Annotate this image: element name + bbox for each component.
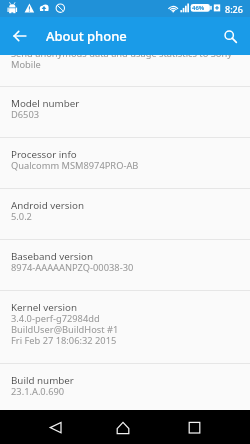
button[interactable]: Android version bbox=[0, 189, 250, 239]
staticText: Processor info bbox=[11, 148, 77, 161]
staticText: 46% bbox=[192, 4, 205, 12]
staticText: Send anonymous data and usage statistics… bbox=[11, 55, 232, 60]
staticText: 3.4.0-perf-g72984dd BuildUser@BuildHost … bbox=[11, 314, 119, 347]
staticText: Kernel version bbox=[11, 301, 78, 314]
staticText: 23.1.A.0.690 bbox=[11, 387, 65, 398]
button[interactable]: Back bbox=[0, 410, 84, 444]
staticText: 8974-AAAAANPZQ-00038-30 bbox=[11, 263, 134, 274]
staticText: Android version bbox=[11, 199, 84, 212]
button[interactable]: Processor info bbox=[0, 138, 250, 188]
button[interactable]: Back bbox=[0, 17, 39, 55]
staticText: D6503 bbox=[11, 110, 40, 121]
button[interactable]: Send anonymous data and usage statistics… bbox=[0, 55, 250, 86]
button[interactable]: Kernel version bbox=[0, 291, 250, 363]
staticText: Model number bbox=[11, 97, 80, 110]
button[interactable]: Search bbox=[211, 17, 250, 55]
button[interactable]: Model number bbox=[0, 87, 250, 137]
button[interactable]: Baseband version bbox=[0, 240, 250, 290]
staticText: Baseband version bbox=[11, 250, 93, 263]
staticText: About phone bbox=[46, 27, 127, 45]
staticText: 8:26 bbox=[225, 3, 243, 15]
staticText: 5.0.2 bbox=[11, 212, 32, 223]
staticText: Build number bbox=[11, 374, 74, 387]
button[interactable]: Recent apps bbox=[167, 410, 250, 444]
staticText: Mobile bbox=[11, 60, 41, 71]
button[interactable]: Home bbox=[84, 410, 167, 444]
staticText: Qualcomm MSM8974PRO-AB bbox=[11, 161, 139, 172]
button[interactable]: Build number bbox=[0, 364, 250, 410]
